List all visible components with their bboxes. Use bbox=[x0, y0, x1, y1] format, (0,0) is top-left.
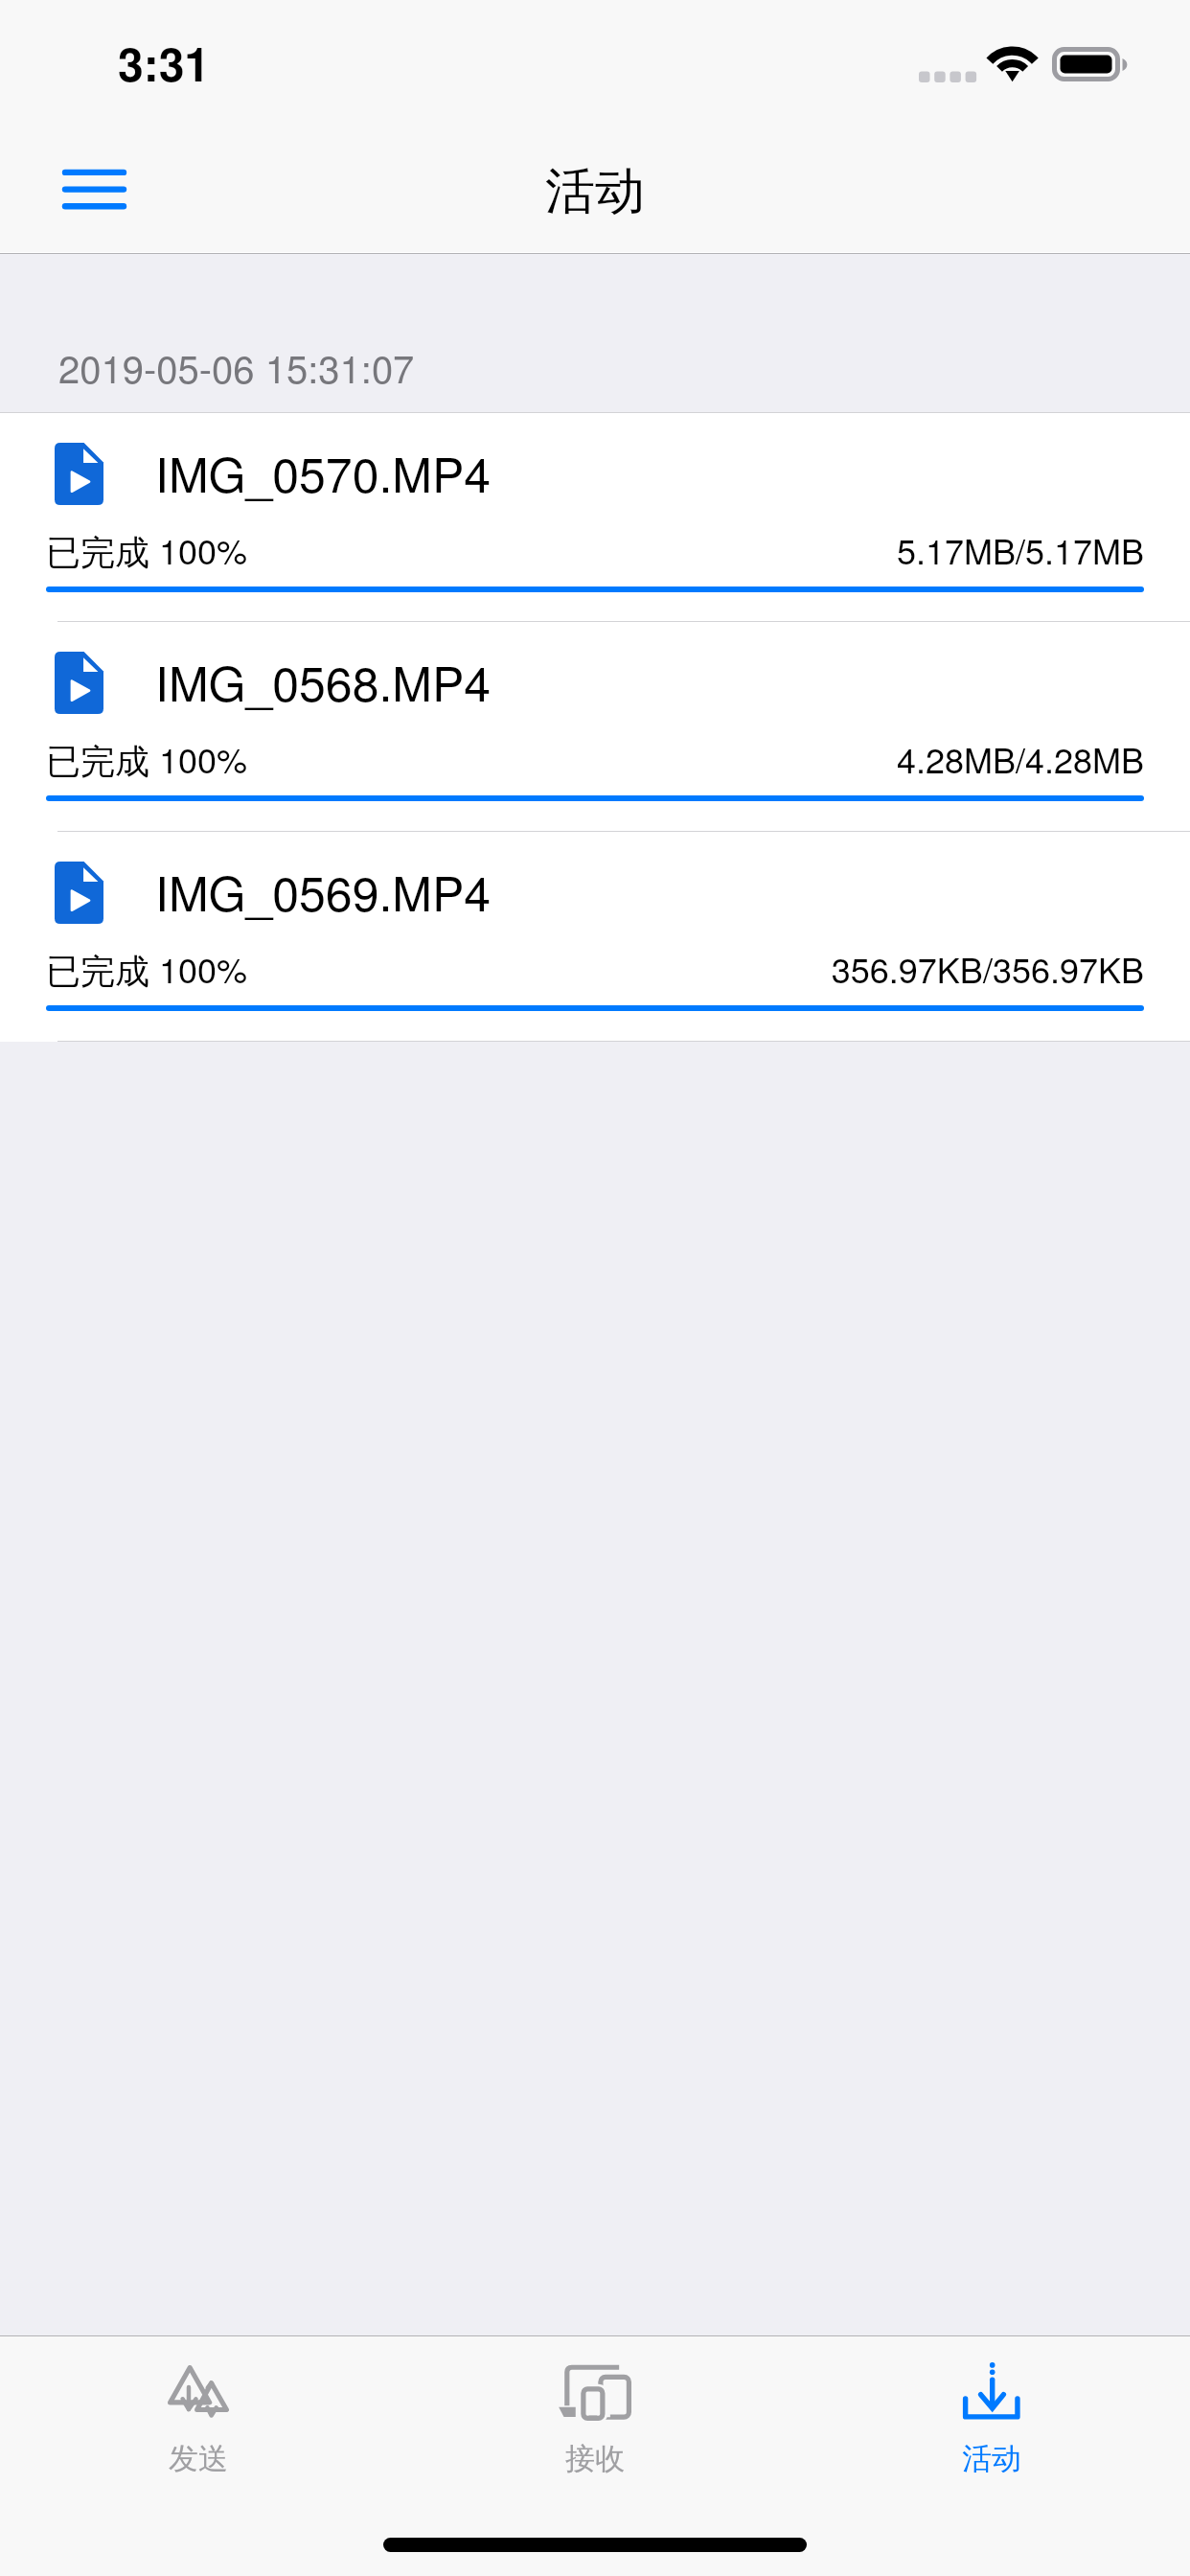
staticText: 活动 bbox=[962, 2440, 1021, 2477]
button[interactable]: 接收 bbox=[397, 2336, 793, 2576]
staticText: 接收 bbox=[565, 2440, 625, 2477]
staticText: 356.97KB/356.97KB bbox=[46, 944, 1144, 994]
button[interactable]: IMG_0568.MP4 bbox=[0, 622, 1190, 832]
staticText: 2019-05-06 15:31:07 bbox=[58, 339, 415, 394]
staticText: 5.17MB/5.17MB bbox=[46, 525, 1144, 575]
button[interactable]: 发送 bbox=[0, 2336, 397, 2576]
staticText: 3:31 bbox=[118, 30, 211, 96]
button[interactable]: IMG_0570.MP4 bbox=[0, 413, 1190, 622]
button[interactable]: 活动 bbox=[793, 2336, 1190, 2576]
staticText: 已完成 100% bbox=[46, 944, 248, 994]
staticText: 4.28MB/4.28MB bbox=[46, 734, 1144, 784]
staticText: IMG_0568.MP4 bbox=[155, 647, 492, 716]
button[interactable]: Menu bbox=[24, 141, 124, 241]
button[interactable]: IMG_0569.MP4 bbox=[0, 832, 1190, 1042]
staticText: 活动 bbox=[545, 160, 645, 223]
staticText: 已完成 100% bbox=[46, 734, 248, 784]
staticText: IMG_0569.MP4 bbox=[155, 857, 492, 926]
staticText: 已完成 100% bbox=[46, 525, 248, 575]
staticText: 发送 bbox=[169, 2440, 228, 2477]
staticText: IMG_0570.MP4 bbox=[155, 438, 492, 507]
